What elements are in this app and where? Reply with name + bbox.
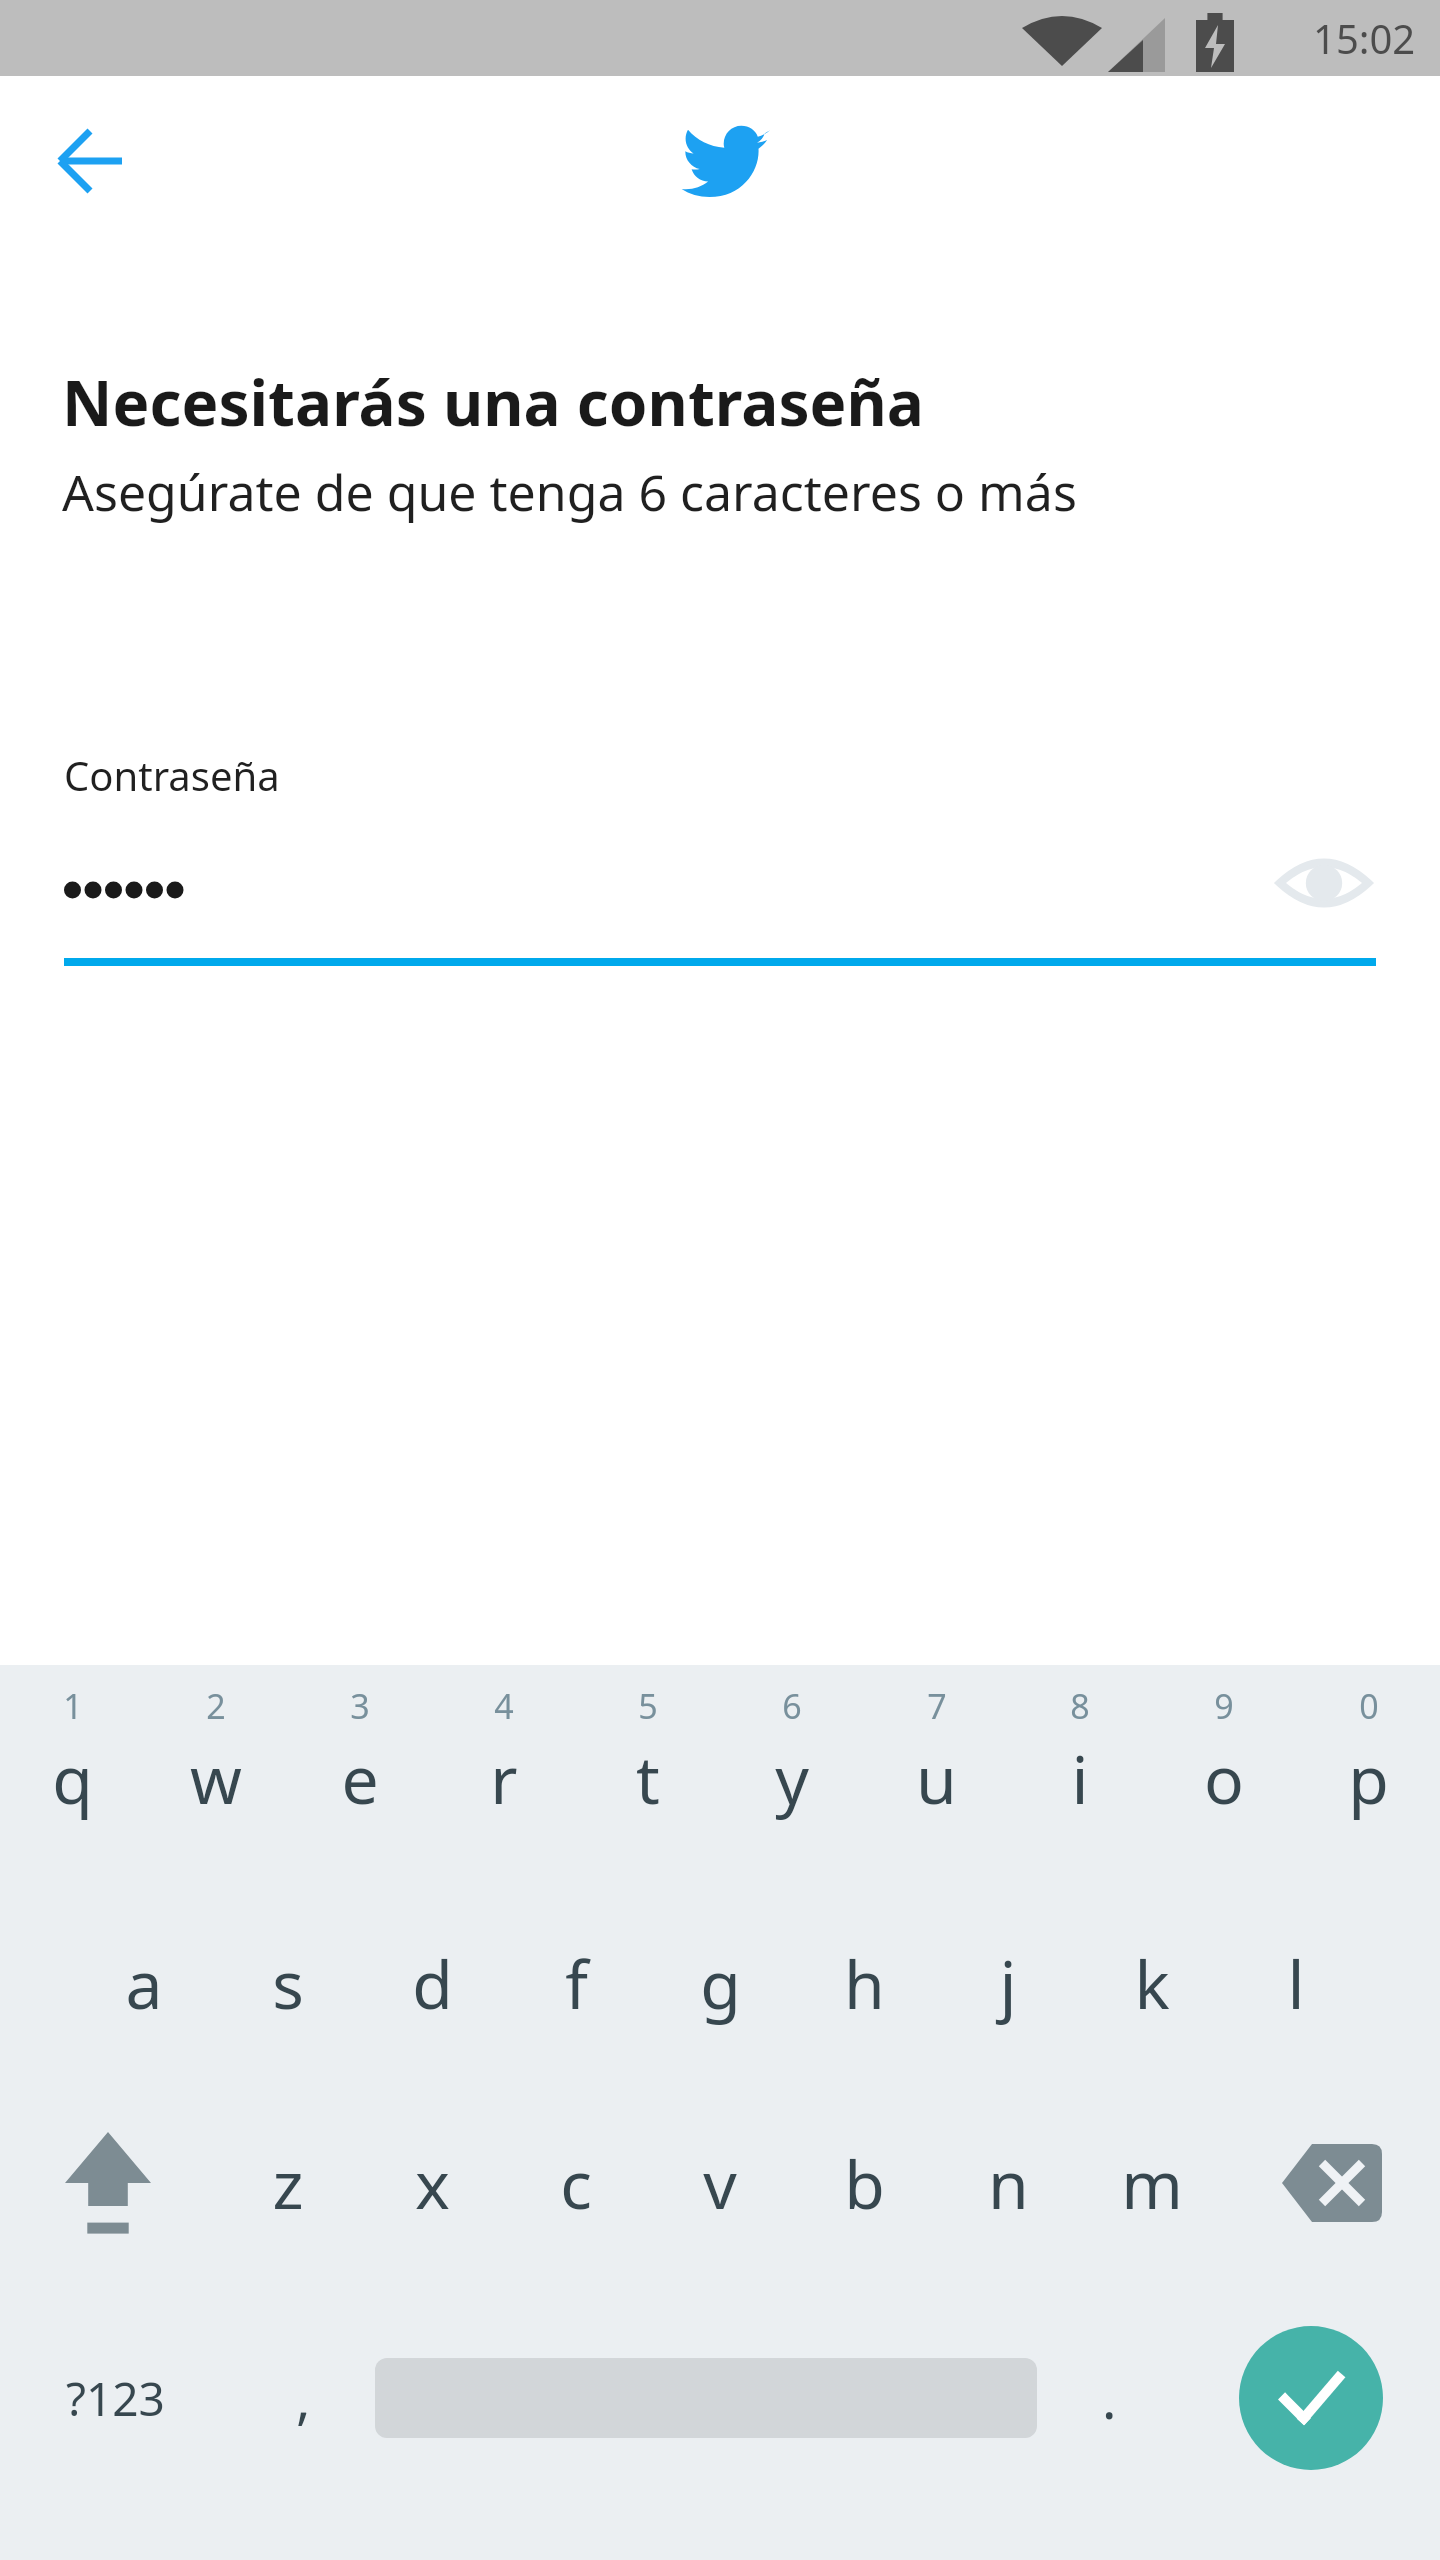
staticText: n [988, 2138, 1029, 2228]
staticText: l [1287, 1938, 1305, 2028]
button[interactable]: Contraseña [0, 748, 1440, 988]
button[interactable]: 8 [1008, 1665, 1152, 1883]
staticText: p [1348, 1733, 1389, 1823]
staticText: w [190, 1733, 242, 1823]
button[interactable]: f [504, 1883, 648, 2083]
button[interactable]: l [1224, 1883, 1368, 2083]
button[interactable]: n [936, 2083, 1080, 2283]
staticText: y [775, 1733, 809, 1823]
staticText: m [1121, 2138, 1183, 2228]
button[interactable]: 2 [144, 1665, 288, 1883]
staticText: ?123 [66, 2367, 165, 2430]
staticText: h [844, 1938, 885, 2028]
staticText: t [636, 1733, 660, 1823]
button[interactable]: 4 [432, 1665, 576, 1883]
staticText: 0 [1359, 1683, 1379, 1729]
button[interactable]: 7 [864, 1665, 1008, 1883]
button[interactable]: c [504, 2083, 648, 2283]
staticText: u [916, 1733, 957, 1823]
button[interactable]: , [231, 2283, 375, 2513]
button[interactable]: Shift [0, 2083, 216, 2283]
staticText: x [415, 2138, 450, 2228]
button[interactable]: v [648, 2083, 792, 2283]
button[interactable]: j [936, 1883, 1080, 2083]
staticText: 1 [63, 1683, 83, 1729]
button[interactable]: d [360, 1883, 504, 2083]
button[interactable]: a [72, 1883, 216, 2083]
staticText: d [412, 1938, 453, 2028]
staticText: e [341, 1733, 379, 1823]
staticText: a [125, 1938, 163, 2028]
button[interactable]: x [360, 2083, 504, 2283]
button[interactable]: Backspace [1224, 2083, 1440, 2283]
staticText: 9 [1214, 1683, 1234, 1729]
staticText: 3 [350, 1683, 370, 1729]
staticText: 8 [1070, 1683, 1090, 1729]
staticText: Contraseña [64, 748, 280, 802]
staticText: f [565, 1938, 588, 2028]
button[interactable]: m [1080, 2083, 1224, 2283]
button[interactable]: b [792, 2083, 936, 2283]
staticText: 15:02 [1313, 11, 1416, 65]
staticText: v [703, 2138, 737, 2228]
staticText: z [272, 2138, 304, 2228]
staticText: o [1204, 1733, 1244, 1823]
staticText: k [1134, 1938, 1170, 2028]
staticText: , [296, 2361, 311, 2435]
staticText: 4 [494, 1683, 514, 1729]
button[interactable]: k [1080, 1883, 1224, 2083]
button[interactable]: Space [375, 2283, 1037, 2513]
staticText: 7 [927, 1683, 947, 1729]
button[interactable]: g [648, 1883, 792, 2083]
staticText: g [700, 1938, 741, 2028]
staticText: b [844, 2138, 885, 2228]
button[interactable]: Show password [1276, 848, 1372, 918]
staticText: 5 [638, 1683, 658, 1729]
staticText: i [1071, 1733, 1089, 1823]
staticText: 2 [206, 1683, 226, 1729]
staticText: r [490, 1733, 518, 1823]
staticText: . [1102, 2361, 1117, 2435]
button[interactable]: 5 [576, 1665, 720, 1883]
button[interactable]: z [216, 2083, 360, 2283]
button[interactable]: ?123 [0, 2283, 231, 2513]
button[interactable]: . [1037, 2283, 1181, 2513]
button[interactable]: 1 [0, 1665, 144, 1883]
staticText: c [560, 2138, 592, 2228]
button[interactable]: Done [1181, 2283, 1440, 2513]
button[interactable]: 6 [720, 1665, 864, 1883]
staticText: s [272, 1938, 304, 2028]
button[interactable]: Back [50, 116, 140, 206]
staticText: Asegúrate de que tenga 6 caracteres o má… [62, 458, 1077, 526]
staticText: Necesitarás una contraseña [62, 360, 924, 444]
button[interactable]: h [792, 1883, 936, 2083]
button[interactable]: 9 [1152, 1665, 1296, 1883]
staticText: 6 [782, 1683, 802, 1729]
button[interactable]: 0 [1296, 1665, 1440, 1883]
button[interactable]: 3 [288, 1665, 432, 1883]
staticText: j [999, 1938, 1017, 2028]
button[interactable]: s [216, 1883, 360, 2083]
staticText: q [52, 1733, 93, 1823]
